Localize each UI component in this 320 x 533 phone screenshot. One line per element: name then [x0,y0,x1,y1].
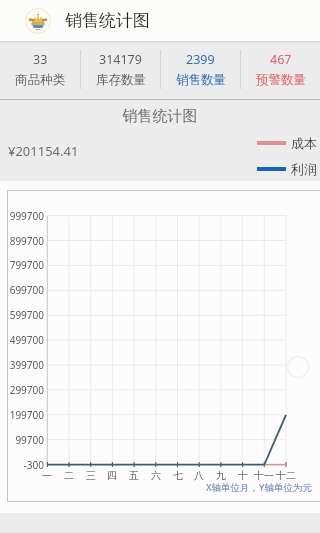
staticText: 99700 [3,433,44,447]
staticText: 预警数量 [256,72,306,88]
staticText: 2399 [186,51,215,68]
staticText: 599700 [3,308,44,322]
staticText: 九 [205,469,237,482]
staticText: 十二 [270,469,302,482]
staticText: 二 [53,469,85,482]
button[interactable]: 467 [241,41,320,98]
staticText: 七 [162,469,194,482]
button[interactable]: 2399 [161,41,240,98]
other: App logo [25,8,51,34]
staticText: ¥201154.41 [8,142,79,160]
staticText: -300 [3,458,44,472]
staticText: 799700 [3,258,44,272]
staticText: 一 [31,469,63,482]
staticText: 三 [75,469,107,482]
staticText: 467 [270,51,292,68]
staticText: 399700 [3,358,44,372]
staticText: 成本 [291,135,317,151]
staticText: 六 [140,469,172,482]
staticText: 999700 [3,209,44,223]
staticText: 499700 [3,333,44,347]
staticText: 商品种类 [15,72,65,88]
staticText: 四 [96,469,128,482]
staticText: 314179 [99,51,142,68]
staticText: 销售统计图 [65,10,150,31]
button[interactable]: 利润 [257,161,317,177]
button[interactable]: 314179 [81,41,160,98]
staticText: 33 [33,51,48,68]
staticText: 销售数量 [176,72,226,88]
staticText: X轴单位月，Y轴单位为元 [206,481,312,494]
staticText: 库存数量 [96,72,146,88]
staticText: 十 [227,469,259,482]
staticText: 五 [118,469,150,482]
staticText: 八 [183,469,215,482]
button[interactable]: 成本 [257,135,317,151]
staticText: 199700 [3,408,44,422]
staticText: 利润 [291,161,317,177]
staticText: 销售统计图 [0,107,320,126]
staticText: 699700 [3,283,44,297]
staticText: 899700 [3,234,44,248]
staticText: 299700 [3,383,44,397]
staticText: 十一 [248,469,280,482]
button[interactable]: 33 [0,41,80,98]
